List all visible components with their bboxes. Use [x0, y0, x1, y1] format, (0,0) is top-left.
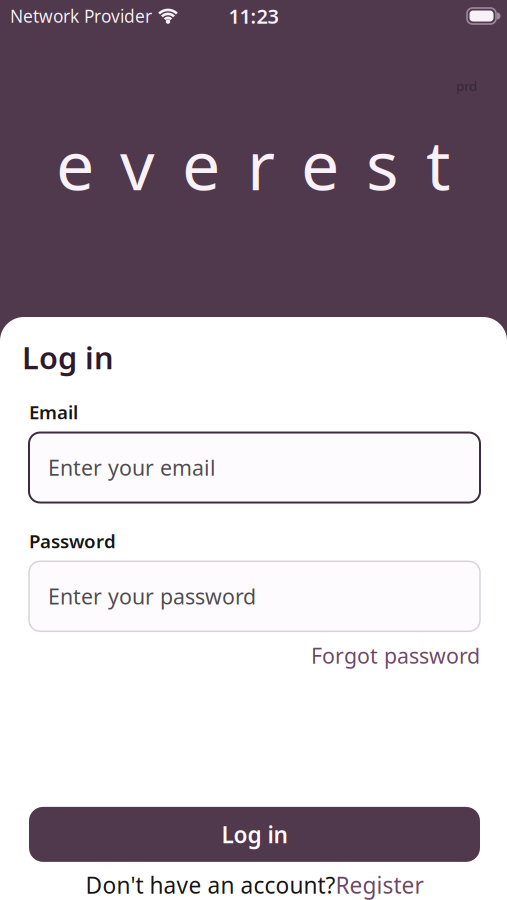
staticText: everest: [56, 119, 451, 209]
staticText: prd: [456, 77, 477, 95]
staticText: Log in: [22, 337, 114, 378]
staticText: Log in: [221, 819, 287, 849]
button[interactable]: Forgot password: [311, 641, 480, 670]
button[interactable]: Log in: [29, 807, 480, 862]
button[interactable]: Enter your password: [29, 561, 480, 631]
staticText: Enter your password: [48, 582, 256, 610]
staticText: Network Provider: [10, 4, 152, 27]
staticText: Password: [29, 528, 116, 553]
staticText: Forgot password: [311, 641, 480, 670]
button[interactable]: Register: [335, 870, 423, 900]
staticText: 11:23: [228, 3, 278, 29]
staticText: Register: [335, 870, 423, 900]
button[interactable]: Enter your email: [29, 432, 480, 502]
staticText: Don't have an account?: [85, 870, 335, 900]
staticText: Enter your email: [48, 453, 216, 482]
staticText: Email: [29, 400, 78, 424]
